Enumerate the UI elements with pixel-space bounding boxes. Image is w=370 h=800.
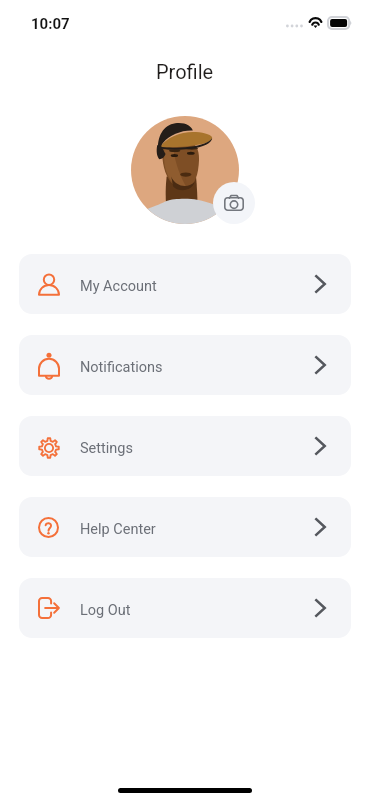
staticText: Log Out [80,602,131,619]
staticText: Settings [80,440,133,457]
button[interactable]: Change profile photo [213,182,255,224]
button[interactable]: Log Out [19,578,351,638]
button[interactable]: Help Center [19,497,351,557]
staticText: My Account [80,278,157,295]
staticText: Profile [156,60,214,83]
button[interactable]: Profile photo [131,116,239,224]
button[interactable]: Settings [19,416,351,476]
button[interactable]: Notifications [19,335,351,395]
staticText: 10:07 [31,15,70,33]
staticText: Help Center [80,521,156,538]
staticText: Notifications [80,359,163,376]
button[interactable]: My Account [19,254,351,314]
